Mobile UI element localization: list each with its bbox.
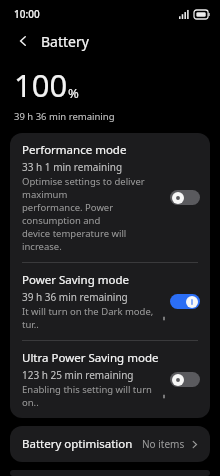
staticText: 33 h 1 min remaining: [22, 160, 123, 174]
staticText: 39 h 36 min remaining: [22, 290, 128, 304]
staticText: Performance mode: [22, 142, 127, 158]
staticText: Ultra Power Saving mode: [22, 350, 159, 366]
staticText: 39 h 36 min remaining: [14, 110, 115, 123]
staticText: 100: [14, 64, 68, 106]
button[interactable]: Performance mode: [10, 133, 210, 262]
staticText: It will turn on the Dark mode, tur..: [22, 305, 164, 331]
button[interactable]: Back: [14, 32, 32, 50]
staticText: Battery optimisation: [22, 436, 133, 452]
staticText: Battery: [41, 32, 89, 51]
staticText: 123 h 25 min remaining: [22, 368, 134, 382]
button[interactable]: [170, 190, 200, 205]
staticText: Enabling this setting will turn on..: [22, 383, 164, 409]
staticText: No items: [142, 437, 185, 451]
button[interactable]: Battery optimisation: [10, 426, 210, 462]
staticText: 10:00: [14, 7, 40, 21]
button[interactable]: Ultra Power Saving mode: [10, 341, 210, 418]
button[interactable]: Power Saving mode: [10, 263, 210, 340]
staticText: Power Saving mode: [22, 272, 129, 288]
button[interactable]: [170, 372, 200, 387]
button[interactable]: [170, 294, 200, 309]
staticText: Optimise settings to deliver maximum per…: [22, 175, 164, 253]
staticText: %: [68, 84, 79, 102]
